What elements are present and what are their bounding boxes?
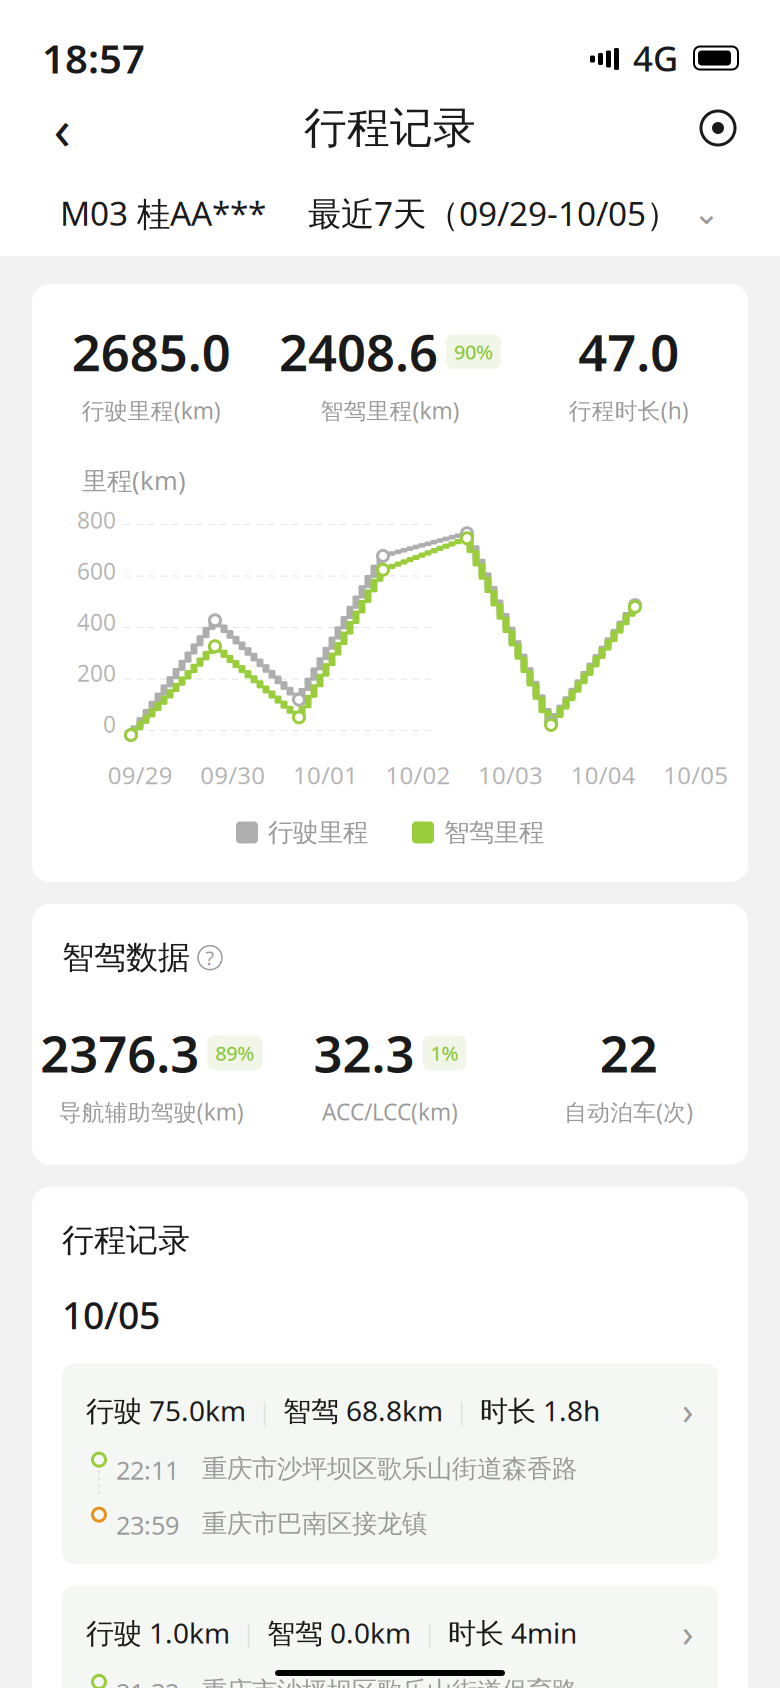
staticText: 32.3: [313, 1019, 414, 1087]
staticText: 重庆市沙坪坝区歌乐山街道森香路: [202, 1453, 577, 1484]
staticText: 1%: [430, 1040, 458, 1066]
staticText: 智驾数据: [62, 938, 190, 977]
staticText: 里程(km): [82, 463, 186, 497]
button[interactable]: M03 桂AA***: [60, 183, 266, 243]
staticText: ›: [682, 1608, 694, 1657]
staticText: 行驶 1.0km: [86, 1614, 230, 1651]
staticText: 10/02: [385, 759, 450, 791]
staticText: 行程记录: [304, 102, 476, 154]
staticText: 10/01: [293, 759, 358, 791]
staticText: 重庆市巴南区接龙镇: [202, 1508, 427, 1539]
staticText: 22:11: [116, 1453, 179, 1487]
staticText: 智驾里程(km): [320, 395, 459, 425]
staticText: 导航辅助驾驶(km): [59, 1097, 244, 1127]
staticText: 最近7天（09/29-10/05）: [308, 191, 679, 235]
button[interactable]: 最近7天（09/29-10/05）: [308, 183, 720, 243]
button[interactable]: 行驶 1.0km: [62, 1586, 718, 1688]
staticText: 10/04: [571, 759, 636, 791]
staticText: ACC/LCC(km): [322, 1097, 458, 1127]
button[interactable]: About smart driving data: [198, 946, 222, 970]
staticText: 18:57: [42, 31, 145, 84]
staticText: 自动泊车(次): [564, 1097, 693, 1127]
staticText: 2408.6: [279, 318, 438, 385]
staticText: |: [411, 1617, 448, 1649]
staticText: 行驶 75.0km: [86, 1392, 246, 1429]
staticText: 10/05: [663, 759, 728, 791]
button[interactable]: Back: [32, 98, 92, 158]
staticText: 时长 1.8h: [480, 1392, 600, 1429]
staticText: ‹: [53, 91, 70, 165]
staticText: 0: [103, 709, 116, 739]
staticText: 重庆市沙坪坝区歌乐山街道保育路: [202, 1675, 577, 1688]
staticText: 行程时长(h): [569, 395, 689, 425]
staticText: |: [230, 1617, 267, 1649]
staticText: 23:59: [116, 1508, 179, 1542]
staticText: |: [443, 1394, 480, 1426]
staticText: 89%: [215, 1040, 254, 1066]
staticText: 2685.0: [72, 318, 231, 385]
staticText: 800: [77, 505, 116, 535]
staticText: 时长 4min: [448, 1614, 577, 1651]
staticText: 21:32: [116, 1675, 179, 1688]
staticText: 400: [77, 607, 116, 637]
staticText: 09/29: [108, 759, 173, 791]
staticText: ›: [682, 1386, 694, 1435]
staticText: 10/05: [62, 1290, 160, 1340]
button[interactable]: 行驶 75.0km: [62, 1364, 718, 1564]
button[interactable]: Settings: [688, 98, 748, 158]
staticText: 行驶里程(km): [82, 395, 221, 425]
staticText: 智驾里程: [444, 817, 544, 848]
staticText: 09/30: [200, 759, 265, 791]
staticText: 10/03: [478, 759, 543, 791]
staticText: 200: [77, 658, 116, 688]
staticText: 600: [77, 556, 116, 586]
staticText: ⌄: [693, 195, 720, 231]
staticText: 4G: [633, 35, 678, 81]
staticText: 90%: [454, 338, 493, 365]
staticText: ?: [205, 944, 214, 971]
staticText: |: [246, 1394, 283, 1426]
staticText: 行程记录: [62, 1221, 190, 1260]
staticText: 47.0: [578, 318, 679, 385]
staticText: 行驶里程: [268, 817, 368, 848]
staticText: 22: [600, 1019, 658, 1087]
staticText: 2376.3: [40, 1019, 199, 1087]
staticText: M03 桂AA***: [60, 191, 266, 235]
staticText: 智驾 68.8km: [283, 1392, 443, 1429]
staticText: 智驾 0.0km: [267, 1614, 411, 1651]
